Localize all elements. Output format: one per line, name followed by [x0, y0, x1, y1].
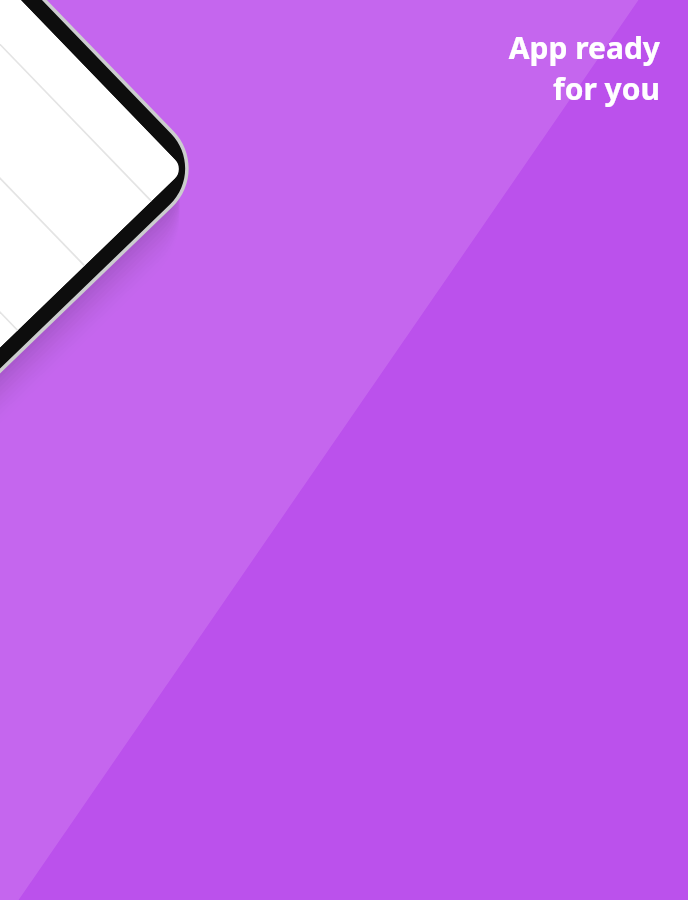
button[interactable]: App preview: [0, 200, 360, 840]
staticText: for you: [553, 68, 660, 109]
staticText: App ready: [508, 27, 660, 68]
